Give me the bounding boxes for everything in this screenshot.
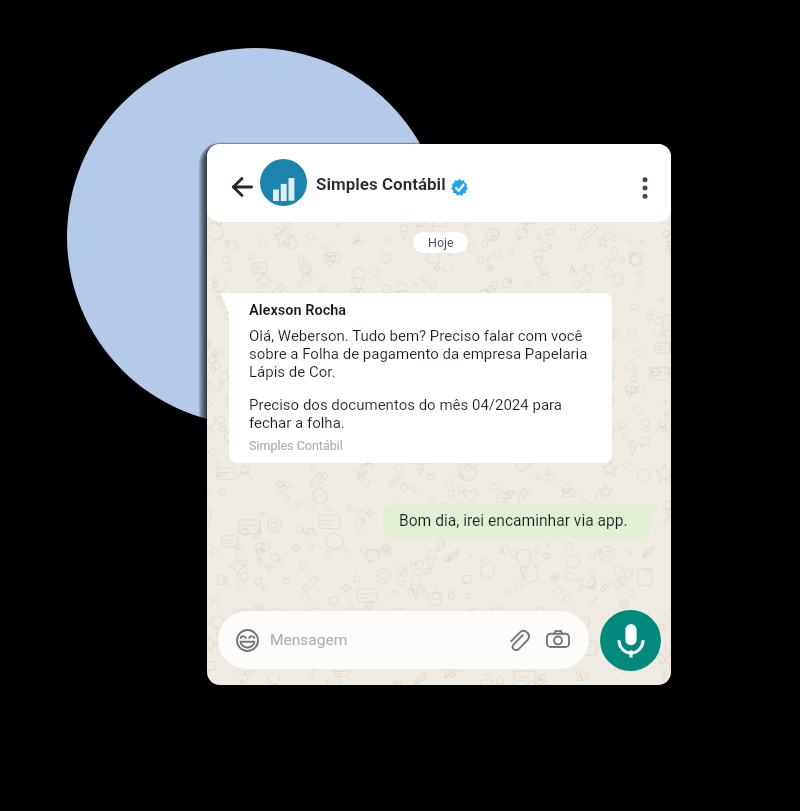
staticText: Preciso dos documentos do mês 04/2024 pa… xyxy=(249,396,562,432)
button[interactable]: Back xyxy=(226,171,258,203)
button[interactable]: More options xyxy=(629,172,661,204)
staticText: Simples Contábil xyxy=(249,438,343,453)
button[interactable]: Camera xyxy=(545,627,571,653)
staticText: Bom dia, irei encaminhar via app. xyxy=(399,512,628,530)
button[interactable]: Mensagem xyxy=(218,611,589,669)
button[interactable]: Attach file xyxy=(505,627,531,653)
staticText: Mensagem xyxy=(270,631,348,649)
staticText: Olá, Weberson. Tudo bem? Preciso falar c… xyxy=(249,327,588,381)
staticText: Hoje xyxy=(428,235,454,250)
button[interactable]: Record voice message xyxy=(600,610,661,671)
staticText: Simples Contábil xyxy=(316,174,446,194)
staticText: Alexson Rocha xyxy=(249,302,347,319)
